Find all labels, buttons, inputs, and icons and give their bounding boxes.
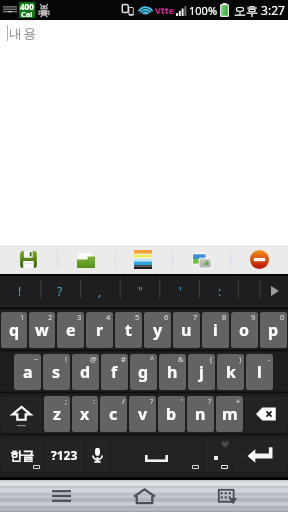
button[interactable]: l [246,354,273,390]
staticText: f [111,361,118,383]
button[interactable]: i [202,312,229,348]
staticText: / [122,396,125,406]
staticText: 한글 [10,448,34,463]
staticText: 내용 [9,25,38,41]
button[interactable]: Colors [114,245,172,274]
staticText: l [257,361,262,383]
button[interactable]: Delete [230,245,288,274]
staticText: q [9,319,20,341]
staticText: Cal [21,9,33,18]
button[interactable]: j [188,354,215,390]
staticText: y [153,319,163,341]
button[interactable]: r [86,312,113,348]
staticText: ~ [34,354,39,364]
staticText: b [166,403,177,425]
staticText: 3 [77,312,82,322]
button[interactable]: s [43,354,70,390]
staticText: z [53,403,61,425]
button[interactable]: Shift [1,396,42,432]
button[interactable]: g [130,354,157,390]
button[interactable]: Symbols [240,276,261,309]
button[interactable]: d [72,354,99,390]
staticText: 400 [20,2,34,12]
staticText: g [138,361,149,383]
staticText: t [125,319,132,341]
staticText: 4 [106,312,111,322]
button[interactable]: " [120,276,160,309]
button[interactable]: a [14,354,41,390]
staticText: 9 [251,312,256,322]
staticText: 7 [193,312,198,322]
button[interactable]: Space [111,438,202,472]
staticText: ! [65,354,68,364]
staticText: e [66,319,76,341]
staticText: 1 [20,312,25,322]
staticText: : [218,283,222,299]
button[interactable]: h [159,354,186,390]
button[interactable]: b [158,396,185,432]
staticText: n [195,403,206,425]
staticText: r [96,319,104,341]
button[interactable]: Voice input [86,438,109,472]
staticText: ? [150,396,154,406]
button[interactable] [204,438,231,472]
button[interactable]: u [173,312,200,348]
staticText: ?123 [51,447,78,463]
button[interactable]: q [1,312,27,348]
staticText: j [199,361,204,383]
staticText: c [109,403,118,425]
button[interactable]: e [57,312,84,348]
staticText: 5 [135,312,140,322]
button[interactable]: ? [40,276,80,309]
button[interactable]: Save [0,245,57,274]
staticText: " [138,283,143,299]
staticText: v [138,403,148,425]
button[interactable]: Photo [172,245,230,274]
button[interactable]: f [101,354,128,390]
button[interactable]: o [231,312,258,348]
button[interactable]: Enter [233,438,287,472]
staticText: w [35,319,49,341]
button[interactable]: 한글 [1,438,43,472]
button[interactable]: y [144,312,171,348]
staticText: ' [179,283,182,299]
button[interactable]: c [100,396,127,432]
button[interactable]: m [216,396,243,432]
staticText: o [239,319,250,341]
button[interactable]: ' [160,276,200,309]
staticText: 8 [222,312,227,322]
button[interactable]: n [187,396,214,432]
button[interactable]: : [200,276,240,309]
button[interactable]: Home [122,480,166,512]
staticText: ^ [150,354,155,364]
button[interactable]: Folder [57,245,114,274]
staticText: 2 [48,312,53,322]
button[interactable]: t [115,312,142,348]
staticText: - [268,354,271,364]
button[interactable]: Menu [39,480,83,512]
staticText: s [52,361,61,383]
staticText: : [93,396,96,406]
staticText: ? [208,396,212,406]
button[interactable]: k [217,354,244,390]
staticText: p [268,319,279,341]
button[interactable]: ?123 [45,438,84,472]
staticText: 0 [280,312,285,322]
button[interactable]: v [129,396,156,432]
button[interactable]: x [72,396,98,432]
button[interactable]: w [29,312,55,348]
button[interactable]: p [260,312,287,348]
staticText: 오후 3:27 [234,2,285,18]
staticText: x [80,403,90,425]
button[interactable]: , [80,276,120,309]
staticText: k [226,361,236,383]
staticText: @ [90,354,97,364]
button[interactable]: More symbols [261,276,288,309]
staticText: Vtte [155,4,175,16]
staticText: a [23,361,33,383]
staticText: u [181,319,192,341]
button[interactable]: z [44,396,70,432]
button[interactable]: ! [0,276,40,309]
button[interactable]: Backspace [245,396,287,432]
button[interactable]: Hide keyboard [205,480,249,512]
